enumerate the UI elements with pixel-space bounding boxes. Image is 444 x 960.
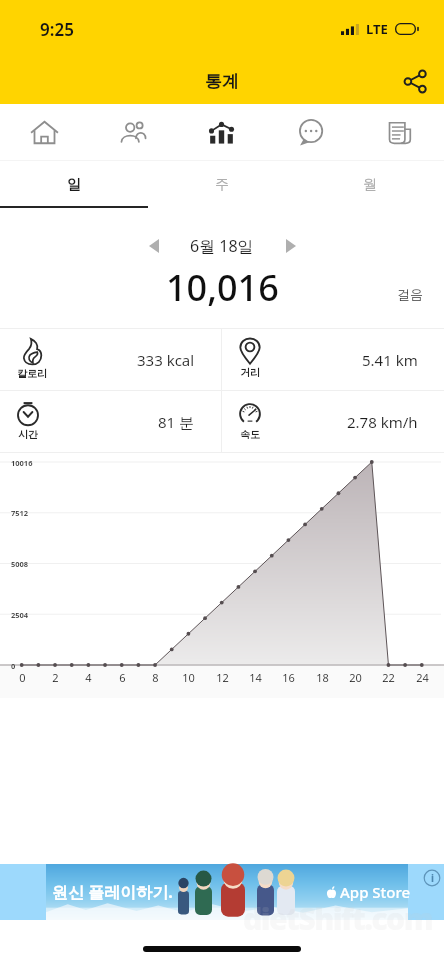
- staticText: 시간: [18, 428, 38, 441]
- staticText: 5008: [11, 559, 29, 569]
- staticText: 10,016: [166, 263, 279, 312]
- staticText: 18: [316, 670, 329, 685]
- staticText: 10: [182, 670, 195, 685]
- staticText: App Store: [340, 882, 411, 902]
- staticText: 6: [119, 670, 126, 685]
- staticText: 속도: [240, 428, 260, 441]
- staticText: 8: [152, 670, 159, 685]
- button[interactable]: 속도: [222, 391, 444, 452]
- button[interactable]: 칼로리: [0, 329, 221, 390]
- staticText: 일: [67, 176, 81, 194]
- button[interactable]: 일: [0, 161, 148, 208]
- staticText: 333 kcal: [137, 350, 195, 370]
- staticText: 10016: [11, 458, 33, 468]
- staticText: 5.41 km: [362, 350, 418, 370]
- staticText: 걸음: [397, 286, 423, 302]
- staticText: 칼로리: [17, 367, 47, 380]
- staticText: 0: [19, 670, 26, 685]
- staticText: 24: [416, 670, 429, 685]
- button[interactable]: 월: [296, 161, 444, 208]
- button[interactable]: 시간: [0, 391, 221, 452]
- staticText: 2504: [11, 610, 29, 620]
- staticText: dietShift.com: [243, 898, 433, 939]
- staticText: 20: [349, 670, 362, 685]
- staticText: 22: [382, 670, 395, 685]
- button[interactable]: Ad info: [423, 869, 441, 887]
- staticText: 81 분: [158, 412, 195, 432]
- button[interactable]: 거리: [222, 329, 444, 390]
- button[interactable]: Next day: [274, 228, 308, 264]
- staticText: 주: [215, 176, 229, 194]
- staticText: 0: [11, 661, 16, 671]
- staticText: 2: [52, 670, 59, 685]
- button[interactable]: Friends: [88, 104, 177, 160]
- staticText: LTE: [366, 20, 388, 38]
- button[interactable]: Chat: [266, 104, 355, 160]
- staticText: 원신 플레이하기.: [52, 881, 173, 903]
- staticText: 월: [363, 176, 377, 194]
- staticText: 12: [216, 670, 229, 685]
- staticText: 통계: [205, 71, 239, 92]
- staticText: 2.78 km/h: [347, 412, 418, 432]
- staticText: 7512: [11, 508, 29, 518]
- button[interactable]: Home: [0, 104, 88, 160]
- staticText: 4: [85, 670, 92, 685]
- staticText: 16: [282, 670, 295, 685]
- button[interactable]: Share: [386, 58, 444, 104]
- staticText: i: [431, 871, 434, 885]
- staticText: 14: [249, 670, 262, 685]
- button[interactable]: Statistics: [177, 104, 266, 160]
- staticText: 9:25: [40, 18, 74, 41]
- staticText: 거리: [240, 366, 260, 379]
- button[interactable]: 주: [148, 161, 296, 208]
- button[interactable]: Advertisement: [0, 864, 444, 920]
- button[interactable]: Previous day: [137, 228, 171, 264]
- button[interactable]: News: [355, 104, 444, 160]
- staticText: 6월 18일: [190, 235, 254, 257]
